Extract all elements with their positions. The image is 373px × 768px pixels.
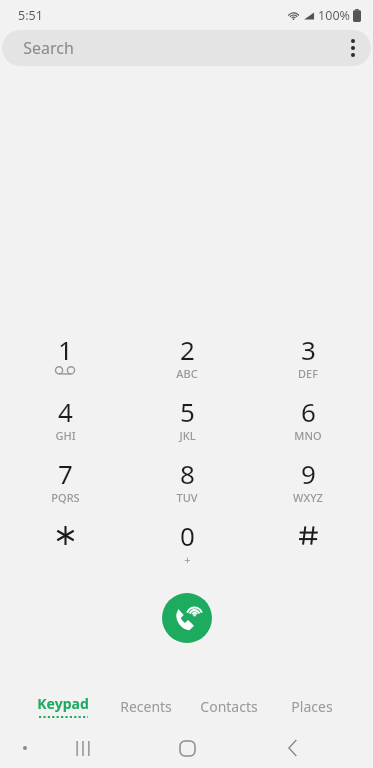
staticText: 100% (318, 7, 350, 24)
button[interactable]: Search (2, 30, 371, 66)
button[interactable]: Keypad (22, 684, 104, 728)
button[interactable] (8, 516, 122, 578)
button[interactable]: 9 (251, 454, 365, 516)
staticText: 5:51 (18, 7, 43, 24)
staticText: Search (23, 37, 74, 59)
button[interactable]: Home (167, 728, 207, 768)
button[interactable]: Back (274, 730, 310, 766)
staticText: DEF (298, 366, 318, 381)
staticText: JKL (179, 428, 196, 443)
button[interactable]: 8 (130, 454, 244, 516)
staticText: 5 (180, 394, 195, 428)
button[interactable] (251, 516, 365, 578)
staticText: Places (291, 697, 333, 716)
staticText: Recents (120, 697, 172, 716)
staticText: TUV (176, 490, 198, 505)
staticText: 7 (58, 456, 73, 490)
button[interactable]: 6 (251, 392, 365, 454)
button[interactable]: 2 (130, 330, 244, 392)
staticText: Contacts (200, 697, 258, 716)
button[interactable]: Recent apps (65, 730, 101, 766)
staticText: 1 (58, 332, 73, 366)
staticText: 0 (180, 518, 195, 552)
button[interactable]: Call (162, 593, 212, 643)
button[interactable]: 1 (8, 330, 122, 392)
button[interactable]: Places (270, 684, 353, 728)
staticText: 9 (301, 456, 316, 490)
staticText: Keypad (37, 694, 89, 713)
button[interactable]: 4 (8, 392, 122, 454)
staticText: ABC (176, 366, 198, 381)
staticText: 4 (58, 394, 73, 428)
staticText: 2 (180, 332, 195, 366)
button[interactable]: Contacts (187, 684, 270, 728)
staticText: 3 (301, 332, 316, 366)
other: Indicator (14, 737, 36, 759)
button[interactable]: 5 (130, 392, 244, 454)
staticText: 6 (301, 394, 316, 428)
button[interactable]: More options (335, 30, 371, 66)
button[interactable]: 0 (130, 516, 244, 578)
staticText: MNO (294, 428, 322, 443)
button[interactable]: 3 (251, 330, 365, 392)
staticText: WXYZ (293, 490, 323, 505)
staticText: + (184, 552, 191, 567)
staticText: GHI (55, 428, 76, 443)
staticText: PQRS (51, 490, 80, 505)
button[interactable]: 7 (8, 454, 122, 516)
button[interactable]: Recents (104, 684, 187, 728)
staticText: 8 (180, 456, 195, 490)
